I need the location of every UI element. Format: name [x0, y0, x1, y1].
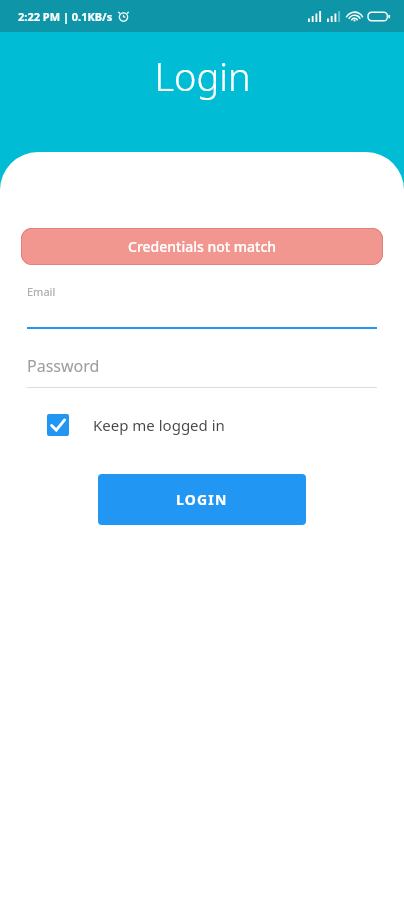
staticText: Password — [27, 355, 100, 377]
staticText: Credentials not match — [128, 237, 277, 256]
button[interactable]: Password — [27, 355, 377, 388]
staticText: Login — [154, 50, 251, 102]
staticText: 2:22 PM | 0.1KB/s — [18, 9, 113, 24]
button[interactable]: Keep me logged in — [47, 414, 225, 436]
button[interactable]: LOGIN — [98, 474, 306, 525]
button[interactable]: Email — [27, 284, 377, 329]
button[interactable]: Credentials not match — [21, 228, 383, 265]
staticText: LOGIN — [176, 490, 228, 509]
staticText: Keep me logged in — [93, 415, 225, 435]
staticText: Email — [27, 284, 56, 299]
